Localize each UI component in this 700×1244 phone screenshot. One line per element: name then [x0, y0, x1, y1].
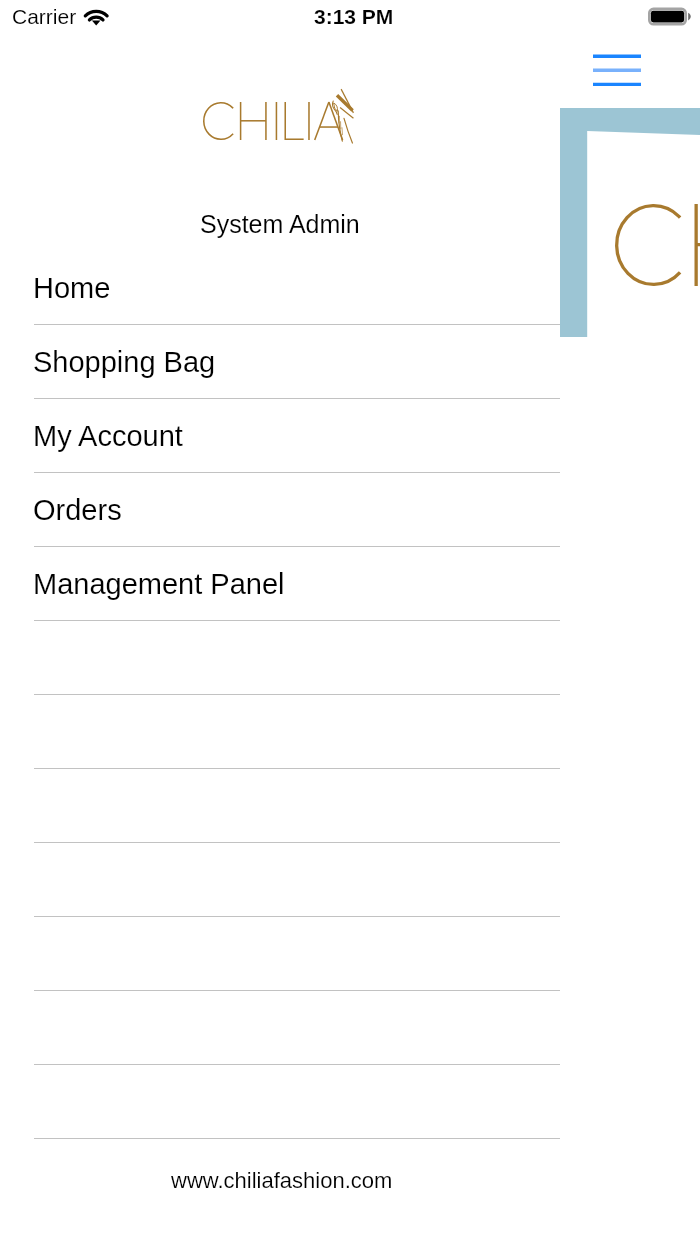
button[interactable]: Orders	[0, 473, 560, 547]
staticText: www.chiliafashion.com	[171, 1168, 393, 1193]
button[interactable]: Shopping Bag	[0, 325, 560, 399]
staticText: Management Panel	[33, 568, 285, 600]
button[interactable]: My Account	[0, 399, 560, 473]
staticText: Home	[33, 272, 111, 304]
button[interactable]: Menu	[578, 40, 656, 96]
staticText: Orders	[33, 494, 122, 526]
staticText: Carrier	[12, 5, 77, 28]
staticText: System Admin	[200, 210, 360, 238]
button[interactable]: Home	[0, 251, 560, 325]
staticText: 3:13 PM	[314, 5, 394, 28]
staticText: My Account	[33, 420, 183, 452]
staticText: Shopping Bag	[33, 346, 216, 378]
button[interactable]: Product	[560, 108, 700, 337]
button[interactable]: Management Panel	[0, 547, 560, 621]
